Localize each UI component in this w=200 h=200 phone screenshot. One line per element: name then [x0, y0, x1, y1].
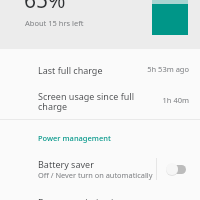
staticText: 1h 40m: [0, 95, 189, 105]
staticText: Power management: [38, 133, 111, 143]
staticText: Battery optimization: [38, 196, 125, 200]
button[interactable]: [0, 147, 200, 190]
button[interactable]: [0, 49, 200, 85]
staticText: Last full charge: [38, 64, 103, 76]
staticText: Off / Never turn on automatically: [38, 170, 153, 180]
staticText: 65%: [24, 0, 66, 15]
button[interactable]: [0, 190, 200, 200]
staticText: 5h 53m ago: [0, 64, 189, 74]
staticText: Battery saver: [38, 158, 94, 170]
staticText: About 15 hrs left: [25, 18, 84, 28]
button[interactable]: [0, 85, 200, 119]
staticText: Screen usage since full charge: [38, 90, 134, 112]
button[interactable]: Battery saver toggle: [160, 158, 192, 180]
